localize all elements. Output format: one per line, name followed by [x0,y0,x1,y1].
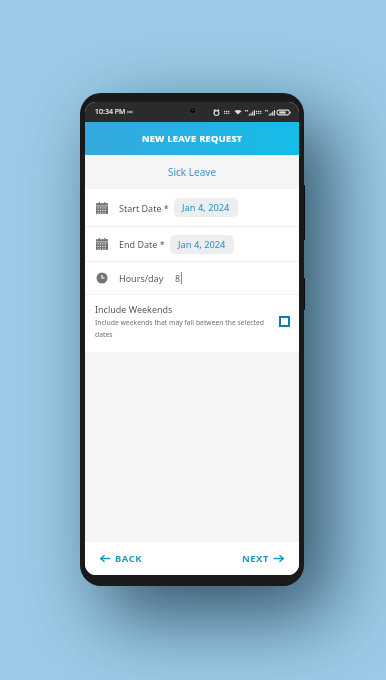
button[interactable]: Start Date * [85,189,299,226]
staticText: Jan 4, 2024 [178,238,226,251]
button[interactable]: Hours/day [85,262,299,294]
staticText: NEW LEAVE REQUEST [142,132,243,145]
staticText: 8 [175,272,181,284]
button[interactable]: BACK [85,545,158,572]
staticText: Start Date * [119,202,169,214]
button[interactable]: Jan 4, 2024 [174,198,238,217]
staticText: Include weekends that may fall between t… [95,318,273,339]
staticText: NEXT [242,552,269,565]
button[interactable]: Sick Leave [85,155,299,189]
staticText: Sick Leave [168,165,217,179]
button[interactable]: NEXT [227,545,299,572]
button[interactable]: Jan 4, 2024 [170,235,234,254]
button[interactable]: Include Weekends [85,295,299,352]
staticText: 10:34 PM [95,107,126,117]
staticText: Hours/day [119,272,164,284]
staticText: Jan 4, 2024 [182,201,230,214]
staticText: Include Weekends [95,303,173,315]
button[interactable]: End Date * [85,227,299,261]
button[interactable]: Include weekends checkbox [279,316,290,327]
staticText: End Date * [119,238,165,250]
staticText: BACK [115,552,143,565]
